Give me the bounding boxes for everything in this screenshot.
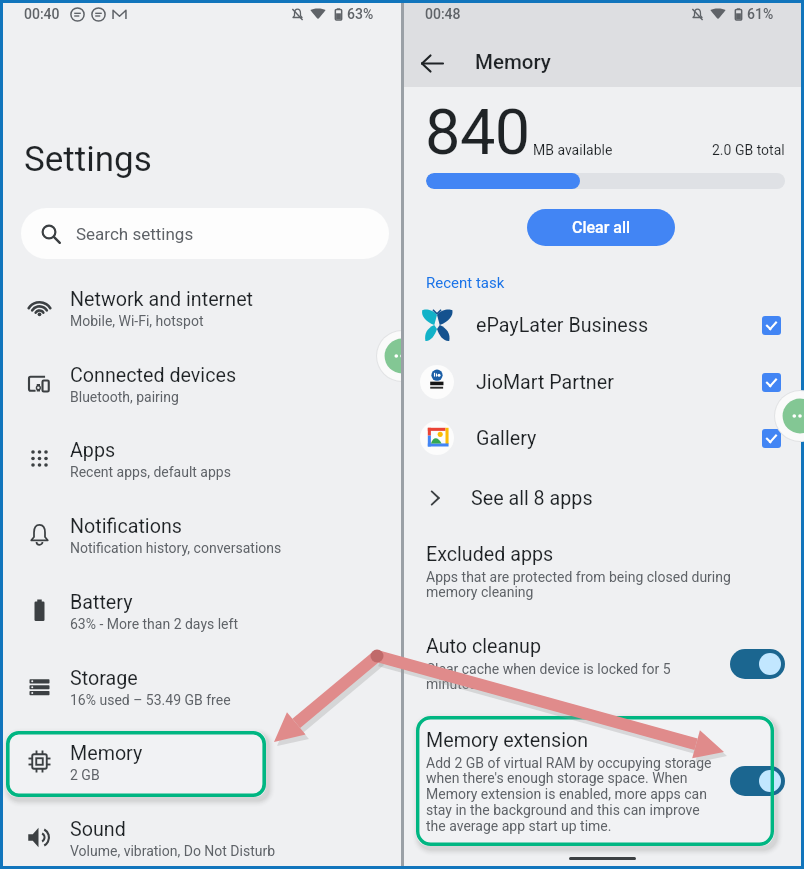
staticText: MB available [533,142,613,158]
button[interactable]: Selected [762,373,781,392]
staticText: 63% [347,6,374,22]
staticText: Clear cache when device is locked for 5 … [426,661,681,693]
staticText: Recent apps, default apps [70,464,231,480]
staticText: Excluded apps [426,543,554,566]
button[interactable]: Battery [3,591,401,655]
staticText: Add 2 GB of virtual RAM by occupying sto… [426,755,722,835]
staticText: 63% - More than 2 days left [70,616,238,632]
staticText: 2 GB [70,767,100,783]
button[interactable]: Toggle [730,766,785,796]
staticText: Bluetooth, pairing [70,389,179,405]
button[interactable]: Memory [3,742,401,806]
button[interactable]: Network and internet [3,288,401,352]
staticText: 61% [747,6,774,22]
staticText: Auto cleanup [426,635,541,658]
button[interactable]: Sound [3,818,401,869]
button[interactable]: More options [376,330,428,382]
staticText: Network and internet [70,288,254,311]
button[interactable]: Connected devices [3,364,401,428]
button[interactable]: Back [412,43,453,84]
staticText: JioMart Partner [476,371,762,394]
staticText: Recent task [426,274,505,292]
button[interactable]: Selected [762,429,781,448]
staticText: Notifications [70,515,182,538]
staticText: 00:40 [24,6,60,22]
staticText: 840 [425,96,530,170]
staticText: Apps that are protected from being close… [426,569,784,601]
button[interactable]: More options [774,390,804,442]
staticText: 00:48 [425,6,461,22]
staticText: 16% used – 53.49 GB free [70,692,231,708]
button[interactable]: Search settings [21,208,389,259]
button[interactable]: Apps [3,439,401,503]
button[interactable]: Gallery [404,410,801,466]
staticText: See all 8 apps [471,487,593,510]
staticText: Memory extension [426,729,589,752]
staticText: ePayLater Business [476,314,762,337]
staticText: Apps [70,439,116,462]
button[interactable]: ePayLater Business [404,297,801,353]
staticText: Search settings [76,224,194,244]
staticText: Volume, vibration, Do Not Disturb [70,843,276,859]
staticText: Clear all [572,218,631,237]
staticText: Settings [24,139,152,180]
button[interactable]: Notifications [3,515,401,579]
staticText: Gallery [476,427,762,450]
staticText: Battery [70,591,133,614]
button[interactable]: JioMart Partner [404,354,801,410]
button[interactable]: Clear all [527,209,675,246]
staticText: Connected devices [70,364,237,387]
staticText: Mobile, Wi-Fi, hotspot [70,313,204,329]
staticText: Memory [70,742,143,765]
staticText: 2.0 GB total [712,142,785,158]
button[interactable]: See all 8 apps [404,471,801,525]
staticText: Storage [70,667,138,690]
staticText: Memory [475,50,551,74]
staticText: Notification history, conversations [70,540,282,556]
staticText: Sound [70,818,126,841]
button[interactable]: Toggle [730,649,785,679]
button[interactable]: Selected [762,316,781,335]
button[interactable]: Storage [3,667,401,731]
